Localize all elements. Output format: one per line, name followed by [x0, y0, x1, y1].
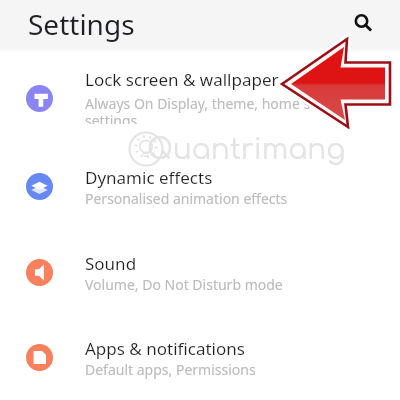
staticText: Sound: [85, 252, 137, 275]
button[interactable]: Sound: [0, 244, 400, 300]
staticText: Personalised animation effects: [85, 189, 288, 208]
staticText: Apps & notifications: [85, 337, 245, 360]
button[interactable]: Dynamic effects: [0, 158, 400, 214]
staticText: Default apps, Permissions: [85, 360, 256, 379]
staticText: Always On Display, theme, home screen se…: [85, 94, 347, 124]
staticText: Settings: [28, 5, 135, 43]
button[interactable]: Apps & notifications: [0, 329, 400, 385]
staticText: Volume, Do Not Disturb mode: [85, 275, 283, 294]
staticText: Dynamic effects: [85, 166, 213, 189]
button[interactable]: Lock screen & wallpaper: [0, 70, 400, 126]
button[interactable]: Search: [346, 11, 378, 43]
staticText: Quantrimang: [147, 134, 346, 165]
staticText: Lock screen & wallpaper: [85, 68, 279, 91]
